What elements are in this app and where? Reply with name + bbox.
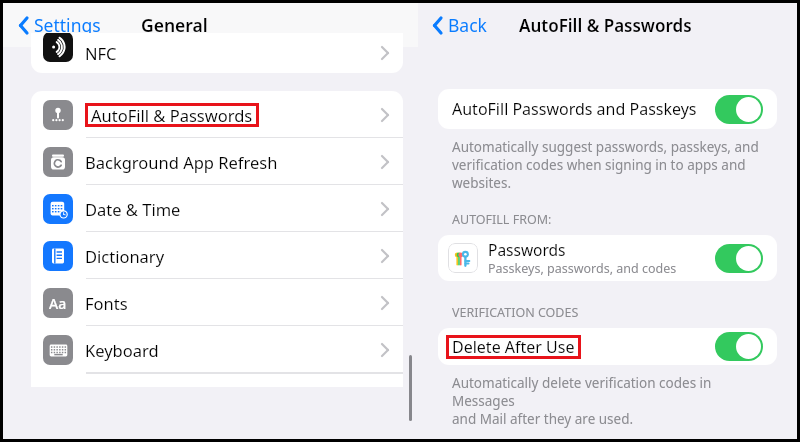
staticText: VERIFICATION CODES [452,304,579,321]
button[interactable]: NFC [31,33,403,73]
staticText: Automatically delete verification codes … [452,374,763,428]
staticText: Settings [34,13,101,37]
staticText: AutoFill & Passwords [91,104,253,126]
staticText: Automatically suggest passwords, passkey… [452,138,759,192]
staticText: Fonts [85,292,128,314]
staticText: NFC [85,42,117,64]
staticText: AutoFill & Passwords [519,14,692,37]
button[interactable]: Toggle on [715,95,763,124]
staticText: AutoFill Passwords and Passkeys [452,98,697,120]
staticText: AUTOFILL FROM: [452,211,552,228]
button[interactable]: Passwords [438,235,777,281]
staticText: Back [448,13,487,37]
button[interactable]: Dictionary [31,232,403,279]
button[interactable]: Keyboard [31,326,403,373]
button[interactable]: AutoFill & Passwords [31,91,403,138]
button[interactable]: Date & Time [31,185,403,232]
staticText: Date & Time [85,198,181,220]
button[interactable]: Toggle on [715,332,763,361]
button[interactable]: Toggle on [715,244,763,273]
button[interactable]: Delete After Use [438,328,777,365]
staticText: Passwords [488,239,566,260]
staticText: Background App Refresh [85,151,278,173]
button[interactable]: AutoFill Passwords and Passkeys [438,89,777,129]
staticText: Keyboard [85,339,159,361]
button[interactable]: Aa [31,279,403,326]
staticText: Aa [49,294,67,313]
button[interactable]: Background App Refresh [31,138,403,185]
staticText: Passkeys, passwords, and codes [488,260,677,277]
button[interactable]: Settings [16,9,103,41]
staticText: Delete After Use [452,336,575,358]
staticText: General [141,13,208,37]
button[interactable]: Back [430,9,489,41]
staticText: Dictionary [85,245,165,267]
